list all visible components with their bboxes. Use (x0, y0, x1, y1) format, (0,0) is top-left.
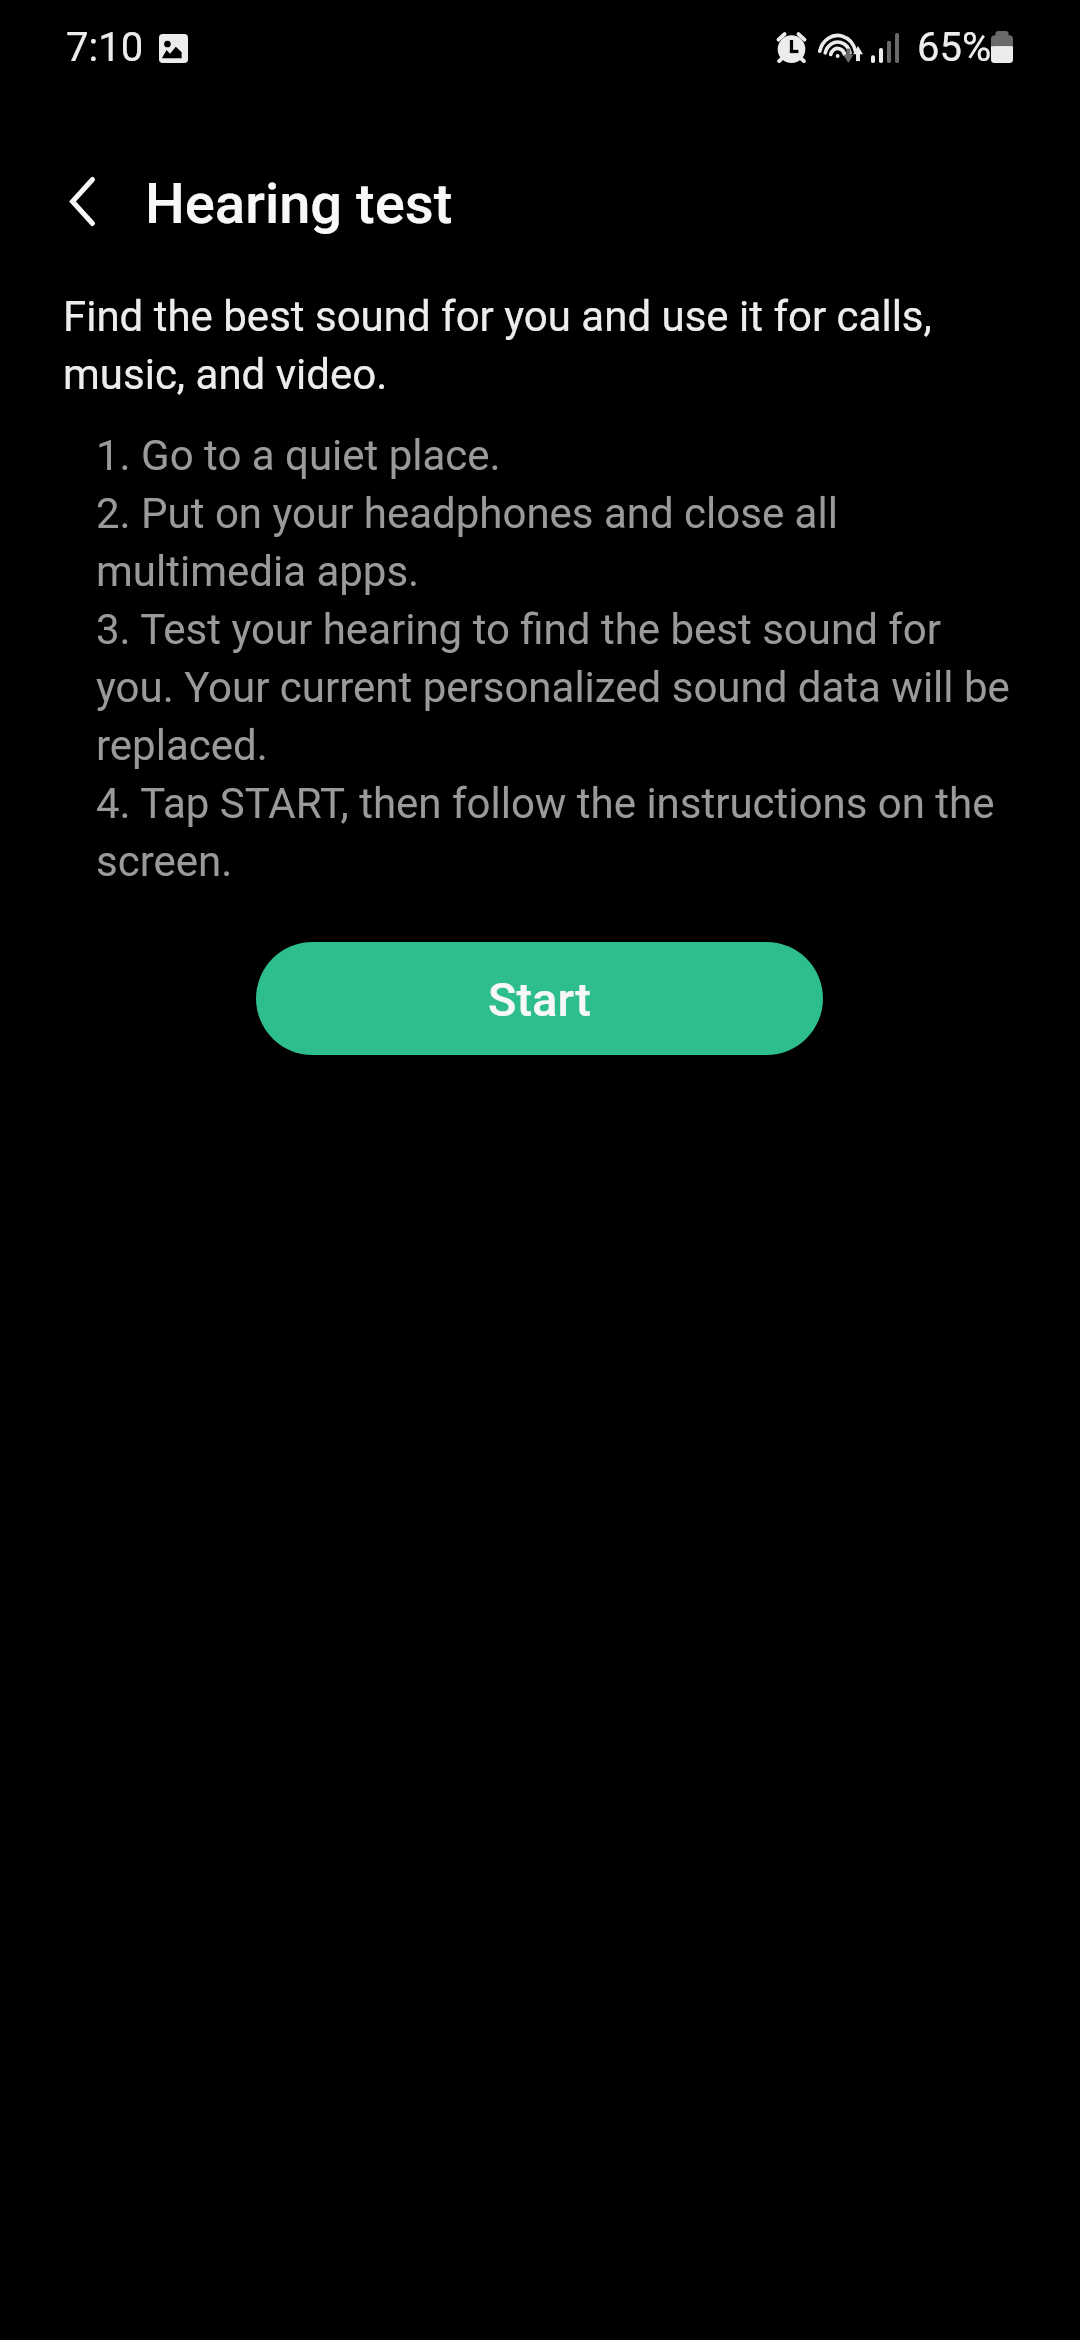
button[interactable]: Navigate up (41, 160, 123, 242)
staticText: 65% (917, 25, 992, 71)
staticText: Find the best sound for you and use it f… (63, 285, 1015, 401)
staticText: 7:10 (66, 25, 144, 71)
staticText: Hearing test (145, 172, 453, 236)
staticText: Start (488, 973, 591, 1027)
staticText: 1. Go to a quiet place. 2. Put on your h… (96, 424, 1016, 888)
button[interactable]: Start (256, 942, 823, 1055)
